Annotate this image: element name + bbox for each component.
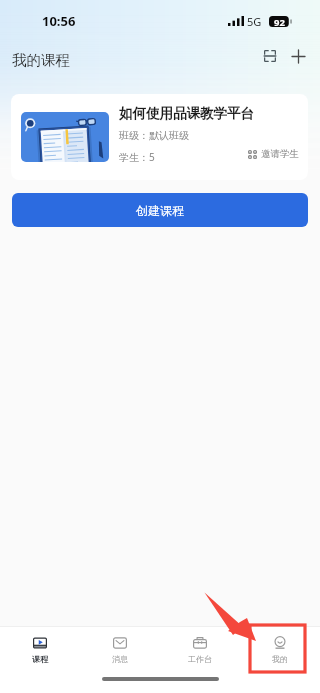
- staticText: 消息: [112, 654, 128, 664]
- button[interactable]: Scan: [258, 44, 282, 68]
- staticText: 5G: [247, 14, 262, 29]
- button[interactable]: 邀请学生: [248, 148, 299, 160]
- staticText: 班级：默认班级: [119, 129, 189, 142]
- button[interactable]: 创建课程: [12, 193, 308, 227]
- button[interactable]: 我的: [240, 627, 320, 664]
- button[interactable]: Add: [286, 44, 310, 68]
- staticText: 如何使用品课教学平台: [119, 105, 254, 122]
- staticText: 92: [274, 16, 285, 27]
- staticText: 创建课程: [136, 203, 184, 218]
- staticText: 10:56: [42, 12, 76, 30]
- button[interactable]: 工作台: [160, 627, 240, 664]
- button[interactable]: 课程: [0, 627, 80, 664]
- staticText: 工作台: [188, 654, 212, 664]
- button[interactable]: 如何使用品课教学平台: [11, 94, 308, 180]
- staticText: 邀请学生: [261, 148, 299, 160]
- staticText: 我的: [272, 654, 288, 664]
- staticText: 课程: [32, 654, 48, 664]
- button[interactable]: 消息: [80, 627, 160, 664]
- staticText: 学生：5: [119, 150, 155, 164]
- staticText: 我的课程: [12, 51, 70, 69]
